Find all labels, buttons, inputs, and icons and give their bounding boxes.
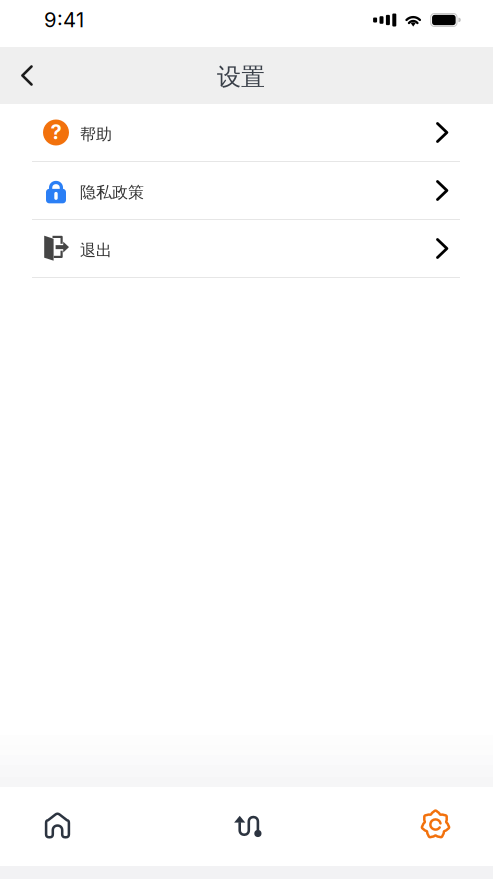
staticText: 9:41 (44, 8, 84, 32)
button[interactable]: ? (0, 104, 493, 162)
button[interactable]: 返回 (5, 53, 49, 97)
staticText: ? (50, 120, 61, 144)
staticText: 帮助 (80, 124, 112, 145)
staticText: 退出 (80, 240, 112, 261)
button[interactable]: 行程 (220, 787, 272, 866)
button[interactable]: 首页 (31, 787, 83, 866)
staticText: 设置 (217, 62, 265, 92)
button[interactable]: 隐私政策 (0, 162, 493, 220)
button[interactable]: 设置 (409, 787, 461, 866)
staticText: 隐私政策 (80, 182, 144, 203)
button[interactable]: 退出 (0, 220, 493, 278)
